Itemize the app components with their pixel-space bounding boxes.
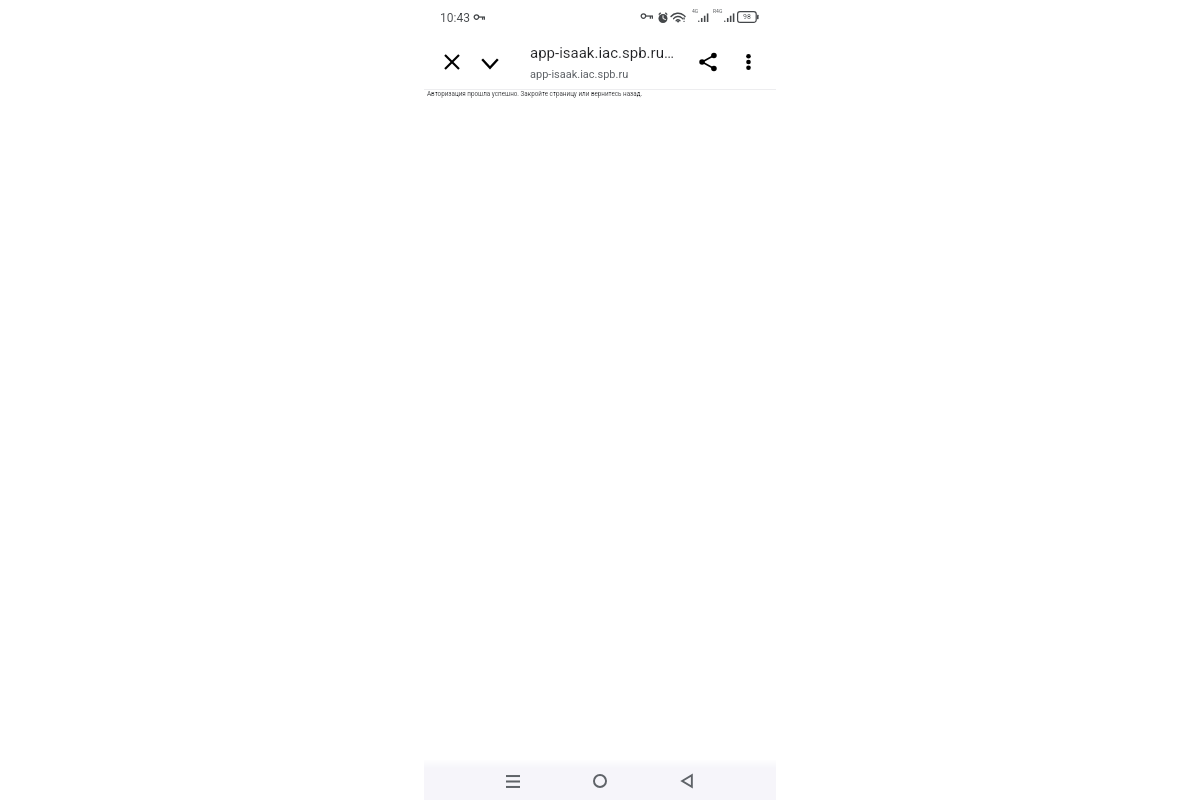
button[interactable]: Minimize — [471, 44, 509, 82]
staticText: app-isaak.iac.spb.ru… — [530, 44, 674, 62]
staticText: R4G — [713, 8, 723, 14]
button[interactable]: More options — [729, 43, 767, 81]
staticText: 98 — [743, 13, 751, 21]
button[interactable]: Share — [689, 43, 727, 81]
staticText: 4G — [692, 8, 699, 14]
button[interactable]: Home — [578, 762, 621, 800]
staticText: app-isaak.iac.spb.ru — [530, 68, 629, 81]
button[interactable]: Back — [665, 762, 708, 800]
button[interactable]: Recents — [491, 762, 534, 800]
button[interactable]: Close — [433, 43, 471, 81]
staticText: Авторизация прошла успешно. Закройте стр… — [427, 90, 643, 97]
staticText: 10:43 — [440, 11, 470, 25]
